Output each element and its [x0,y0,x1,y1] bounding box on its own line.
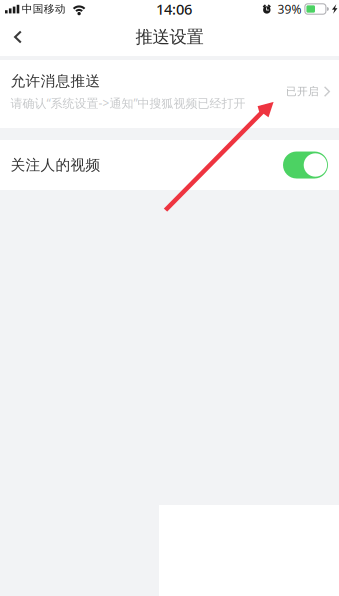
staticText: 39% [277,1,301,17]
staticText: 14:06 [156,0,192,19]
staticText: 推送设置 [135,26,203,48]
button[interactable]: 关注人的视频 [283,151,328,178]
button[interactable]: 返回 [0,20,34,54]
staticText: 关注人的视频 [10,156,100,174]
staticText: 允许消息推送 [10,72,100,90]
button[interactable]: 允许消息推送 [0,60,339,128]
staticText: 已开启 [286,85,319,98]
staticText: 中国移动 [22,2,66,15]
staticText: 请确认“系统设置->通知”中搜狐视频已经打开 [10,95,245,111]
